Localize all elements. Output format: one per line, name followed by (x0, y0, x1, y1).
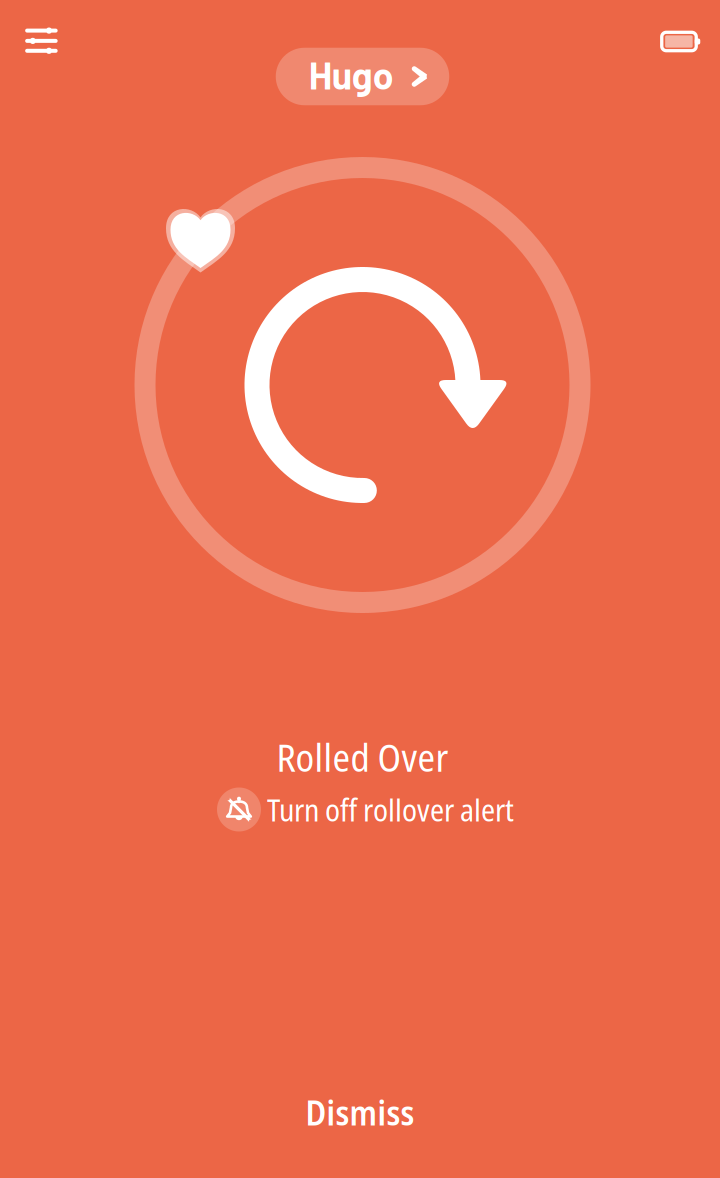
staticText: Hugo (309, 52, 394, 97)
staticText: Rolled Over (276, 731, 448, 783)
staticText: Dismiss (305, 1088, 414, 1136)
button[interactable]: Dismiss (0, 1067, 720, 1157)
button[interactable]: Hugo (276, 48, 449, 105)
staticText: Turn off rollover alert (267, 789, 514, 830)
button[interactable]: Turn off rollover alert (217, 787, 514, 831)
button[interactable]: Settings (11, 15, 72, 67)
